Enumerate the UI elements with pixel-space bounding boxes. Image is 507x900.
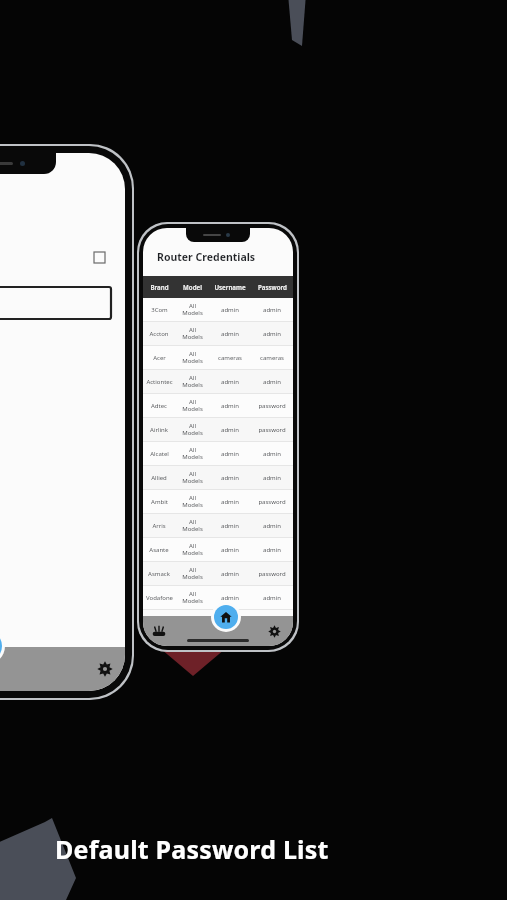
staticText: admin <box>263 330 281 338</box>
staticText: All Models <box>182 350 203 365</box>
button[interactable]: 3Com <box>143 298 293 321</box>
staticText: admin <box>263 450 281 458</box>
staticText: admin <box>221 378 239 386</box>
staticText: password <box>258 570 286 578</box>
staticText: Vodafone <box>146 594 173 602</box>
staticText: Ambit <box>151 498 168 506</box>
staticText: Adtec <box>151 402 167 410</box>
staticText: Allied <box>151 474 167 482</box>
staticText: Acer <box>153 354 166 362</box>
staticText: admin <box>221 474 239 482</box>
staticText: All Models <box>182 494 203 509</box>
button[interactable]: Actiontec <box>143 370 293 393</box>
staticText: Airlink <box>150 426 168 434</box>
button[interactable]: Custom Address <box>0 250 105 265</box>
staticText: Router Credentials <box>157 250 256 264</box>
button[interactable]: Home <box>214 605 238 629</box>
staticText: Alcatel <box>150 450 169 458</box>
staticText: All Models <box>182 326 203 341</box>
staticText: Model <box>183 283 202 291</box>
button[interactable]: Acer <box>143 346 293 369</box>
staticText: admin <box>221 498 239 506</box>
button[interactable] <box>0 287 111 319</box>
button[interactable]: Ambit <box>143 490 293 513</box>
staticText: Username <box>214 283 246 291</box>
staticText: admin <box>221 450 239 458</box>
staticText: All Models <box>182 470 203 485</box>
button[interactable]: Asmack <box>143 562 293 585</box>
staticText: admin <box>263 594 281 602</box>
staticText: Brand <box>150 283 169 291</box>
staticText: All Models <box>182 518 203 533</box>
staticText: Accton <box>149 330 169 338</box>
staticText: admin <box>263 546 281 554</box>
staticText: admin <box>221 330 239 338</box>
staticText: All Models <box>182 542 203 557</box>
staticText: admin <box>263 522 281 530</box>
staticText: All Models <box>182 398 203 413</box>
staticText: All Models <box>182 590 203 605</box>
button[interactable]: Asante <box>143 538 293 561</box>
staticText: password <box>258 426 286 434</box>
staticText: admin <box>221 402 239 410</box>
button[interactable]: Vodafone <box>143 586 293 609</box>
staticText: admin <box>221 306 239 314</box>
staticText: admin <box>263 378 281 386</box>
staticText: password <box>258 498 286 506</box>
staticText: All Models <box>182 302 203 317</box>
staticText: cameras <box>218 354 242 362</box>
button[interactable]: Airlink <box>143 418 293 441</box>
staticText: admin <box>221 522 239 530</box>
staticText: Arris <box>152 522 166 530</box>
staticText: Password <box>258 283 287 291</box>
staticText: Asmack <box>148 570 170 578</box>
staticText: admin <box>221 570 239 578</box>
staticText: Actiontec <box>146 378 173 386</box>
button[interactable]: Settings <box>268 625 281 638</box>
staticText: 3Com <box>151 306 168 314</box>
staticText: password <box>258 402 286 410</box>
button[interactable]: Arris <box>143 514 293 537</box>
staticText: admin <box>263 306 281 314</box>
button[interactable]: Home <box>0 630 2 662</box>
button[interactable]: Adtec <box>143 394 293 417</box>
staticText: cameras <box>260 354 284 362</box>
staticText: All Models <box>182 446 203 461</box>
staticText: Asante <box>149 546 169 554</box>
button[interactable]: Alcatel <box>143 442 293 465</box>
staticText: All Models <box>182 566 203 581</box>
staticText: admin <box>221 426 239 434</box>
button[interactable]: Allied <box>143 466 293 489</box>
button[interactable]: Routers <box>152 624 166 638</box>
staticText: All Models <box>182 422 203 437</box>
staticText: Default Password List <box>55 832 329 866</box>
staticText: admin <box>263 474 281 482</box>
staticText: admin <box>221 594 239 602</box>
staticText: All Models <box>182 374 203 389</box>
button[interactable]: Settings <box>97 661 113 677</box>
button[interactable]: Accton <box>143 322 293 345</box>
staticText: admin <box>221 546 239 554</box>
